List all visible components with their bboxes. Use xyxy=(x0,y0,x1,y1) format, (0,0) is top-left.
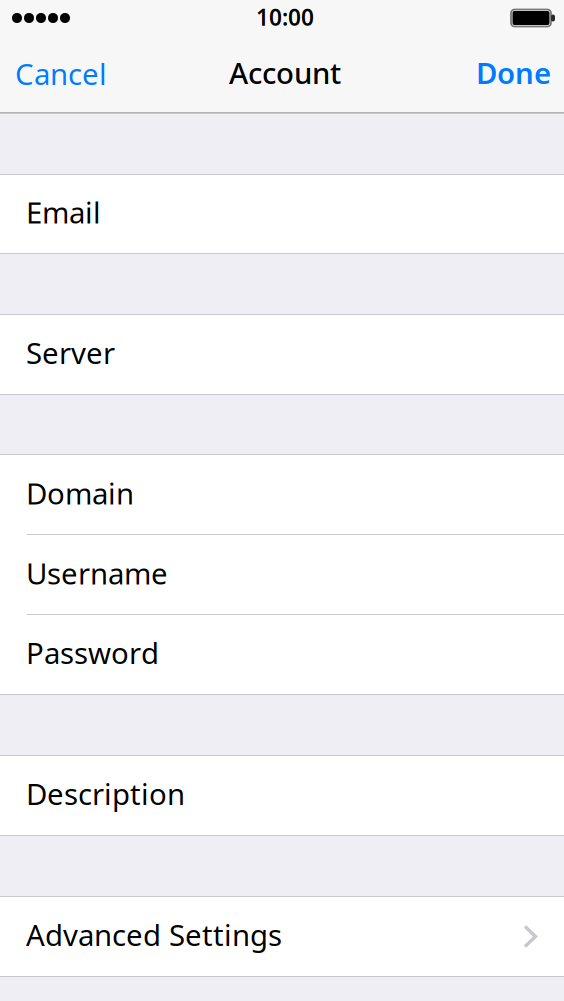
button[interactable]: Email xyxy=(0,175,564,253)
button[interactable]: Server xyxy=(0,315,564,394)
staticText: Username xyxy=(26,553,168,592)
button[interactable]: Username xyxy=(0,535,564,615)
button[interactable]: Password xyxy=(0,615,564,694)
staticText: 10:00 xyxy=(256,2,314,32)
staticText: Password xyxy=(26,633,159,672)
staticText: Cancel xyxy=(15,54,107,93)
button[interactable]: Domain xyxy=(0,455,564,535)
staticText: Account xyxy=(229,53,341,92)
button[interactable]: Description xyxy=(0,756,564,835)
staticText: Advanced Settings xyxy=(26,915,282,954)
button[interactable]: Done xyxy=(464,36,564,113)
staticText: Done xyxy=(476,53,551,92)
staticText: Email xyxy=(26,192,101,231)
staticText: Domain xyxy=(26,473,134,512)
button[interactable]: Cancel xyxy=(0,36,119,113)
staticText: Server xyxy=(26,333,115,372)
staticText: Description xyxy=(26,774,185,813)
button[interactable]: Advanced Settings xyxy=(0,897,564,976)
